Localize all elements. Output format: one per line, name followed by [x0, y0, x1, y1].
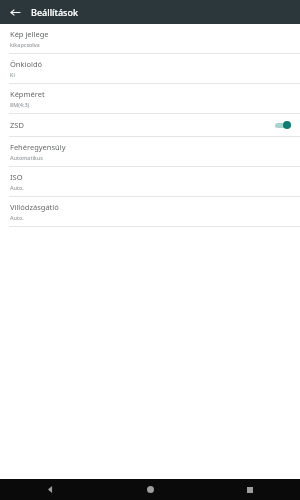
staticText: Automatikus: [10, 154, 43, 161]
button[interactable]: Home: [100, 479, 200, 500]
staticText: Képméret: [10, 89, 45, 99]
staticText: Beállítások: [31, 6, 78, 18]
staticText: ISO: [10, 172, 23, 182]
staticText: Villódzásgátló: [10, 202, 59, 212]
staticText: ZSD: [10, 120, 24, 130]
staticText: Auto.: [10, 214, 24, 221]
staticText: Önkioldó: [10, 59, 43, 69]
staticText: Kép jellege: [10, 29, 49, 39]
button[interactable]: Back: [0, 479, 100, 500]
button[interactable]: Képméret: [0, 84, 300, 113]
button[interactable]: ISO: [0, 167, 300, 196]
staticText: Fehéregyensúly: [10, 142, 66, 152]
button[interactable]: Fehéregyensúly: [0, 137, 300, 166]
button[interactable]: Recent apps: [200, 479, 300, 500]
staticText: kikapcsolva: [10, 41, 40, 48]
button[interactable]: Villódzásgátló: [0, 197, 300, 226]
staticText: Auto.: [10, 184, 24, 191]
button[interactable]: Back: [7, 4, 23, 20]
staticText: Ki: [10, 71, 15, 78]
button[interactable]: ZSD: [0, 114, 300, 136]
staticText: 8M(4:3): [10, 101, 30, 108]
button[interactable]: Önkioldó: [0, 54, 300, 83]
button[interactable]: Kép jellege: [0, 24, 300, 53]
